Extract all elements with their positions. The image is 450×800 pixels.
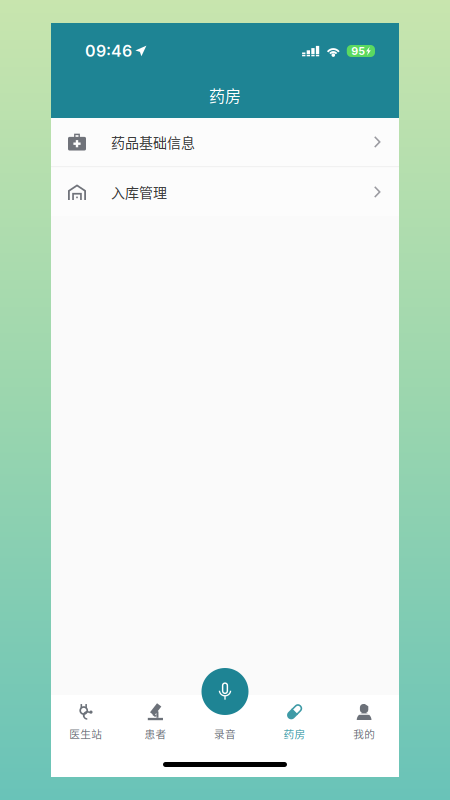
- button[interactable]: 入库管理: [51, 168, 399, 216]
- staticText: 09:46: [85, 41, 132, 61]
- staticText: 患者: [144, 726, 166, 741]
- staticText: 我的: [353, 726, 375, 741]
- staticText: 录音: [214, 726, 236, 741]
- button[interactable]: 医生站: [51, 695, 121, 747]
- staticText: 医生站: [69, 726, 102, 741]
- button[interactable]: 录音: [201, 668, 248, 715]
- staticText: 药品基础信息: [111, 132, 195, 152]
- staticText: 入库管理: [111, 182, 167, 202]
- staticText: 药房: [284, 726, 306, 741]
- button[interactable]: 录音: [190, 695, 260, 747]
- button[interactable]: 药房: [260, 695, 329, 747]
- staticText: 95: [351, 44, 365, 57]
- button[interactable]: 我的: [329, 695, 399, 747]
- button[interactable]: 药品基础信息: [51, 118, 399, 166]
- staticText: 药房: [209, 83, 241, 107]
- button[interactable]: 患者: [121, 695, 190, 747]
